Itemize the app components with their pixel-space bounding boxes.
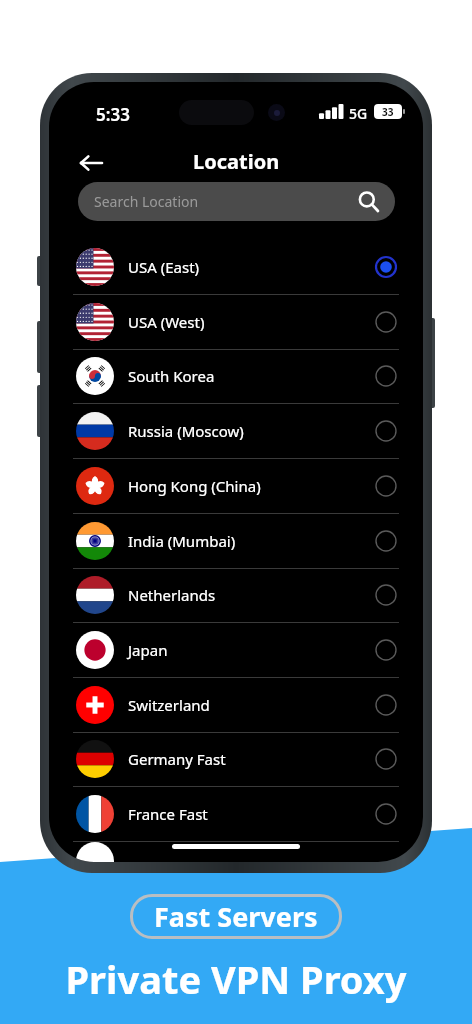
staticText: Private VPN Proxy xyxy=(65,953,407,1005)
staticText: 5:33 xyxy=(96,103,130,126)
button[interactable]: India (Mumbai) xyxy=(73,514,399,569)
staticText: France Fast xyxy=(128,804,208,824)
staticText: Hong Kong (China) xyxy=(128,476,261,496)
staticText: 33 xyxy=(382,105,394,119)
button[interactable]: South Korea xyxy=(73,349,399,404)
staticText: Japan xyxy=(128,640,168,660)
staticText: USA (East) xyxy=(128,257,200,277)
button[interactable]: Hong Kong (China) xyxy=(73,459,399,514)
staticText: Search Location xyxy=(94,192,199,211)
staticText: Netherlands xyxy=(128,585,216,605)
staticText: South Korea xyxy=(128,366,215,386)
button[interactable]: USA (West) xyxy=(73,295,399,350)
button[interactable]: Netherlands xyxy=(73,568,399,623)
staticText: Switzerland xyxy=(128,695,210,715)
button[interactable]: Search Location xyxy=(78,182,395,221)
button[interactable]: Switzerland xyxy=(73,678,399,733)
staticText: Fast Servers xyxy=(154,898,318,935)
staticText: 5G xyxy=(349,104,368,123)
button[interactable]: Germany Fast xyxy=(73,732,399,787)
staticText: Location xyxy=(193,148,280,175)
button[interactable]: Back xyxy=(72,144,110,182)
button[interactable]: Russia (Moscow) xyxy=(73,404,399,459)
button[interactable]: Japan xyxy=(73,623,399,678)
staticText: Russia (Moscow) xyxy=(128,421,244,441)
staticText: Germany Fast xyxy=(128,749,226,769)
button[interactable]: Fast Servers xyxy=(154,898,318,935)
staticText: USA (West) xyxy=(128,312,205,332)
staticText: India (Mumbai) xyxy=(128,531,236,551)
button[interactable]: USA (East) xyxy=(73,240,399,295)
button[interactable]: France Fast xyxy=(73,787,399,842)
